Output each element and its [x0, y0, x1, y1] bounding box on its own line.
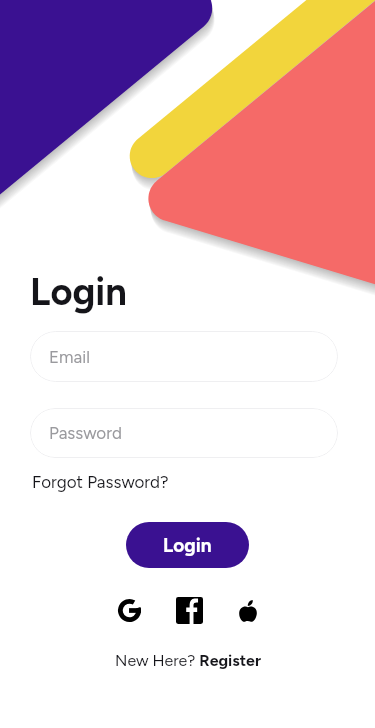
- button[interactable]: Sign in with Facebook: [175, 597, 203, 624]
- button[interactable]: Email: [30, 331, 338, 382]
- button[interactable]: Sign in with Google: [118, 597, 141, 624]
- button[interactable]: Forgot Password?: [32, 472, 169, 492]
- staticText: Login: [30, 269, 127, 315]
- button[interactable]: Password: [30, 408, 338, 458]
- button[interactable]: New Here? Register: [115, 651, 261, 670]
- button[interactable]: Login: [126, 522, 249, 568]
- staticText: Login: [163, 534, 212, 557]
- staticText: Password: [49, 423, 122, 443]
- staticText: Email: [49, 347, 90, 367]
- button[interactable]: Sign in with Apple: [239, 597, 257, 624]
